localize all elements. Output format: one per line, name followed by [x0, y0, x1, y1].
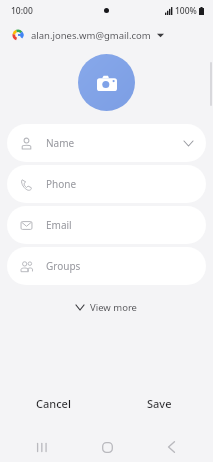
staticText: alan.jones.wm@gmail.com: [31, 29, 151, 42]
button[interactable]: Recents: [20, 432, 64, 462]
staticText: View more: [90, 301, 137, 314]
button[interactable]: Save: [106, 388, 213, 418]
staticText: Phone: [46, 177, 77, 191]
button[interactable]: Home: [85, 432, 129, 462]
button[interactable]: Add photo: [78, 54, 135, 111]
staticText: Cancel: [36, 396, 71, 411]
button[interactable]: Email: [7, 206, 206, 244]
button[interactable]: Groups: [7, 247, 206, 285]
button[interactable]: Cancel: [0, 388, 106, 418]
staticText: Name: [46, 136, 75, 150]
button[interactable]: View more: [66, 297, 147, 318]
button[interactable]: Name: [7, 124, 206, 162]
staticText: Groups: [46, 259, 81, 273]
button[interactable]: alan.jones.wm@gmail.com: [0, 22, 213, 48]
staticText: 100%: [175, 5, 197, 17]
button[interactable]: Phone: [7, 165, 206, 203]
staticText: 10:00: [11, 5, 33, 17]
staticText: Save: [147, 396, 172, 411]
button[interactable]: Back: [149, 432, 193, 462]
staticText: Email: [46, 218, 72, 232]
